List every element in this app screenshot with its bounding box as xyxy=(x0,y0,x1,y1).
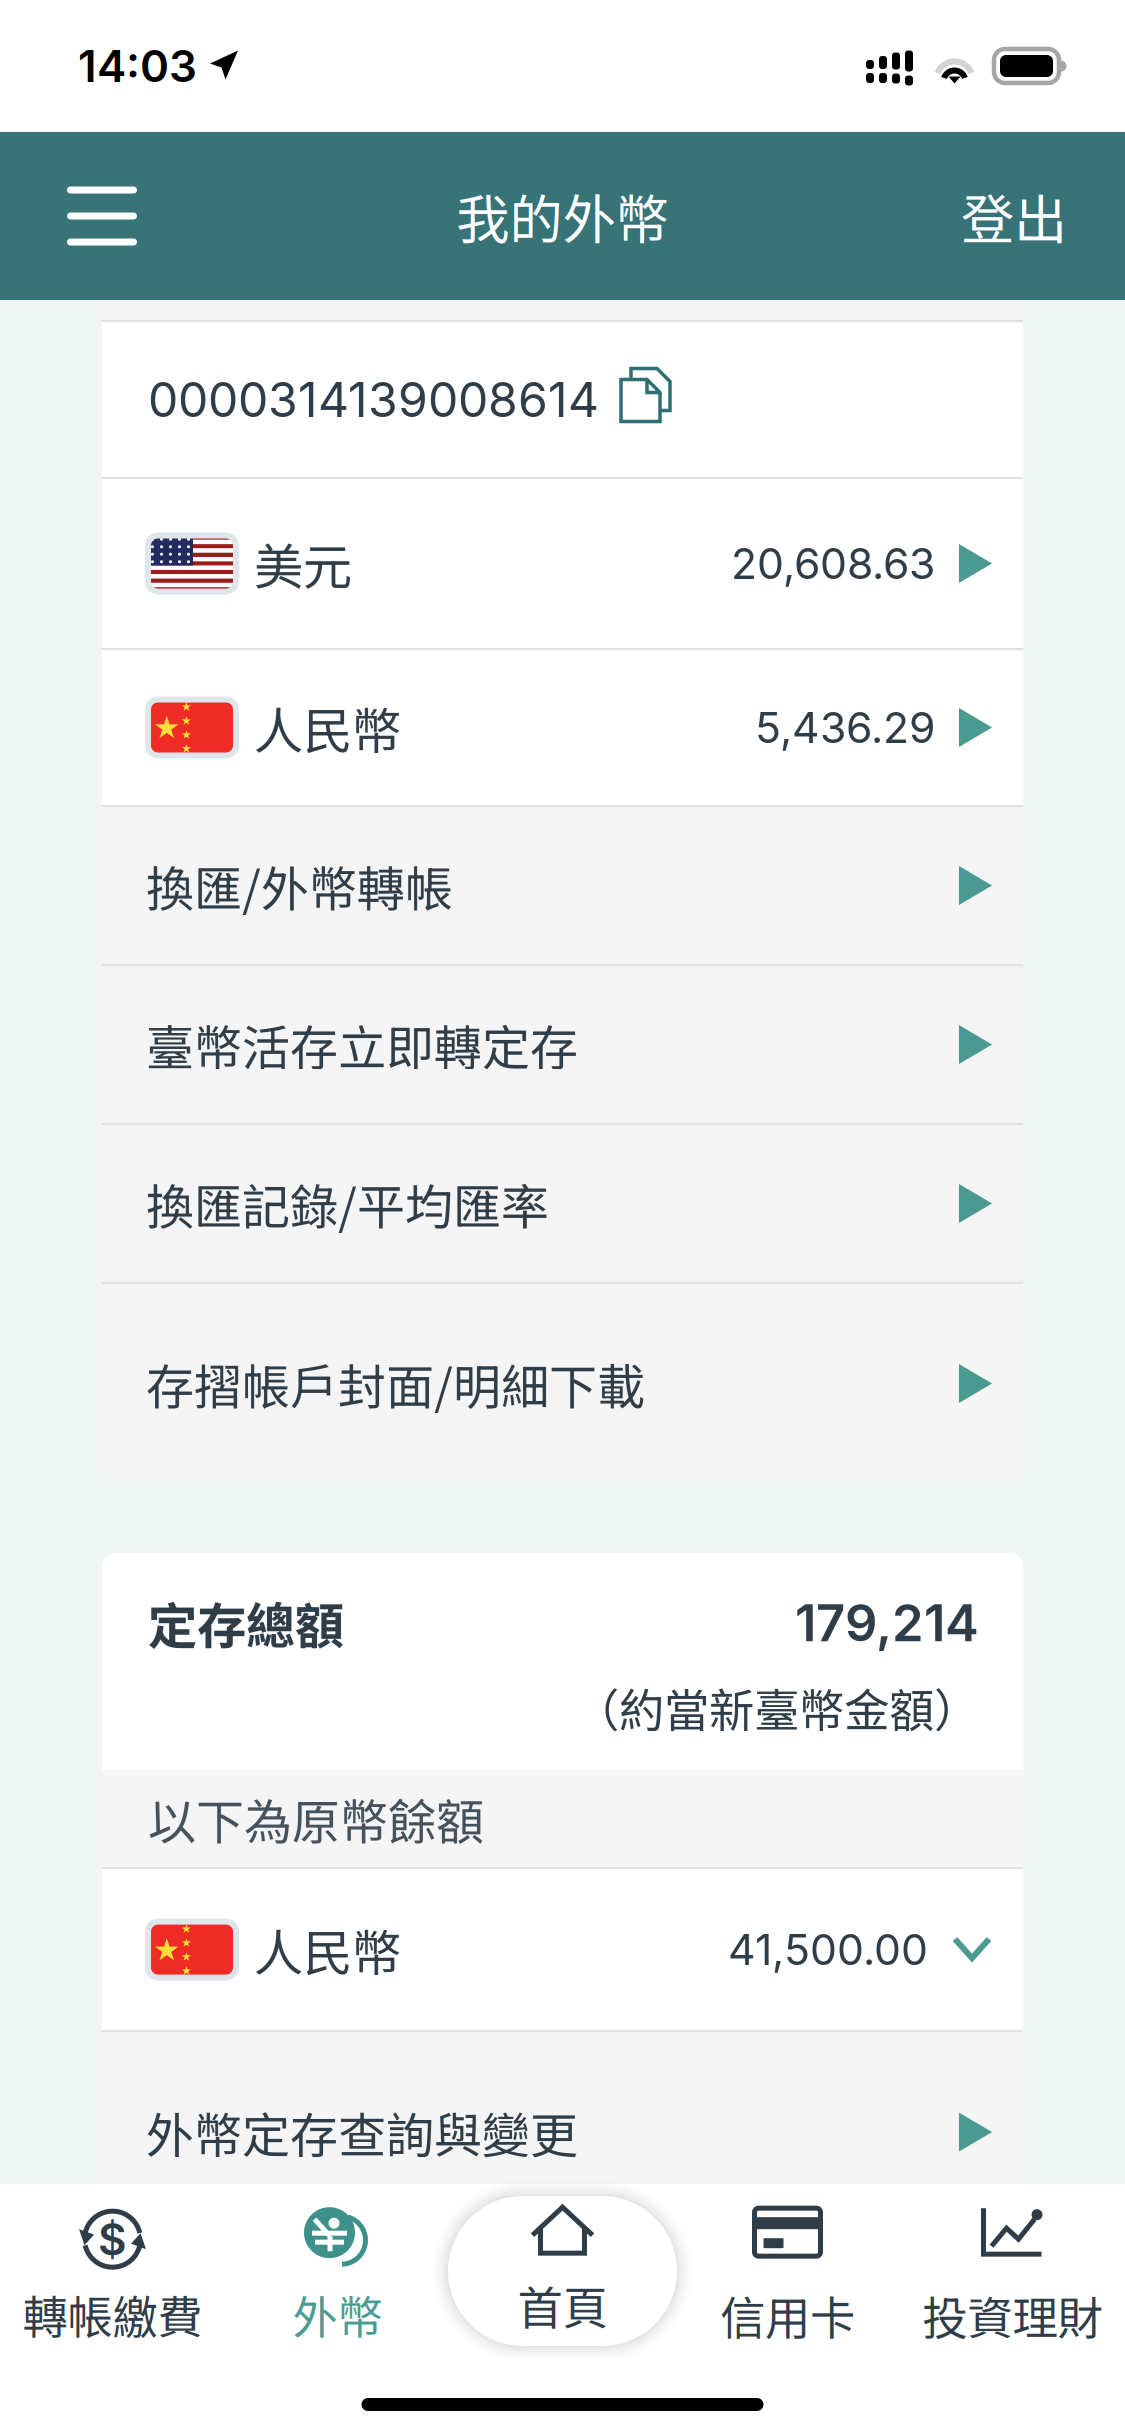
staticText: ★ xyxy=(153,1932,180,1967)
button[interactable]: ★ xyxy=(102,1869,1023,2030)
staticText: 外幣 xyxy=(292,2281,382,2347)
staticText: 首頁 xyxy=(517,2282,607,2348)
button[interactable]: 外幣 xyxy=(225,2184,450,2370)
button[interactable]: 登出 xyxy=(961,132,1067,300)
staticText: 存摺帳戶封面/明細下載 xyxy=(146,1349,645,1418)
staticText: 換匯/外幣轉帳 xyxy=(146,851,453,920)
button[interactable]: $ xyxy=(0,2184,225,2370)
staticText: 41,500.00 xyxy=(728,1924,928,1975)
staticText: 登出 xyxy=(961,177,1067,255)
button[interactable]: 美元 xyxy=(102,479,1023,648)
button[interactable]: 首頁 xyxy=(432,2181,692,2361)
staticText: 我的外幣 xyxy=(456,177,668,255)
button[interactable]: ★ xyxy=(102,650,1023,805)
staticText: 臺幣活存立即轉定存 xyxy=(146,1010,578,1079)
button[interactable]: 換匯/外幣轉帳 xyxy=(102,807,1023,964)
staticText: 定存總額 xyxy=(148,1587,344,1658)
staticText: 5,436.29 xyxy=(755,702,935,753)
button[interactable]: 存摺帳戶封面/明細下載 xyxy=(102,1284,1023,1483)
staticText: $ xyxy=(98,2213,127,2266)
staticText: 投資理財 xyxy=(922,2282,1102,2348)
staticText: 信用卡 xyxy=(720,2282,855,2348)
staticText: 轉帳繳費 xyxy=(22,2281,202,2347)
staticText: ★ xyxy=(181,713,192,727)
staticText: ★ xyxy=(181,700,192,714)
button[interactable]: 投資理財 xyxy=(900,2184,1125,2370)
staticText: ★ xyxy=(181,1963,192,1977)
button[interactable]: 0000314139008614 xyxy=(102,322,1023,477)
staticText: 14:03 xyxy=(78,39,197,93)
staticText: 人民幣 xyxy=(254,692,401,763)
button[interactable]: Menu xyxy=(42,132,162,300)
staticText: 0000314139008614 xyxy=(148,370,599,429)
staticText: ★ xyxy=(181,741,192,755)
button[interactable]: 信用卡 xyxy=(675,2184,900,2370)
staticText: ★ xyxy=(153,710,180,745)
staticText: 20,608.63 xyxy=(731,538,935,589)
staticText: 換匯記錄/平均匯率 xyxy=(146,1169,549,1238)
button[interactable]: 換匯記錄/平均匯率 xyxy=(102,1125,1023,1282)
staticText: 外幣定存查詢與變更 xyxy=(146,2097,578,2167)
button[interactable]: 外幣定存查詢與變更 xyxy=(102,2032,1023,2232)
staticText: ★ xyxy=(181,1950,192,1964)
staticText: ★ xyxy=(181,1936,192,1950)
staticText: 人民幣 xyxy=(254,1914,401,1985)
staticText: ★ xyxy=(181,1922,192,1936)
staticText: ★ xyxy=(181,727,192,741)
staticText: （約當新臺幣金額） xyxy=(574,1674,979,1740)
staticText: 以下為原幣餘額 xyxy=(148,1784,484,1853)
staticText: 首頁 xyxy=(517,2272,607,2338)
button[interactable]: 臺幣活存立即轉定存 xyxy=(102,966,1023,1123)
staticText: 美元 xyxy=(254,528,352,599)
button[interactable]: 首頁 xyxy=(450,2184,675,2370)
staticText: 179,214 xyxy=(795,1592,979,1653)
